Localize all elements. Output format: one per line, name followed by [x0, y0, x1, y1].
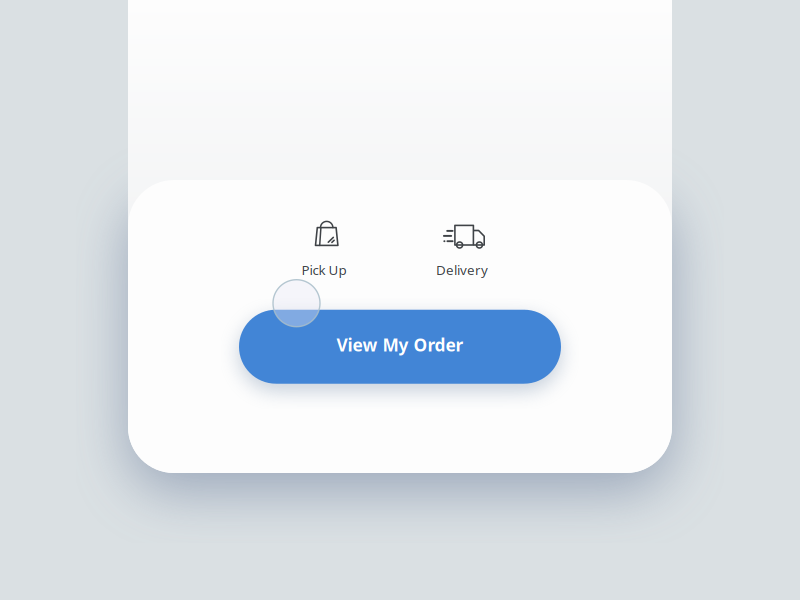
button[interactable]: Delivery: [412, 218, 512, 279]
staticText: View My Order: [336, 333, 463, 356]
button[interactable]: Pick Up: [274, 218, 374, 279]
staticText: Pick Up: [301, 261, 346, 279]
button[interactable]: View My Order: [239, 310, 561, 384]
staticText: Delivery: [436, 261, 488, 279]
